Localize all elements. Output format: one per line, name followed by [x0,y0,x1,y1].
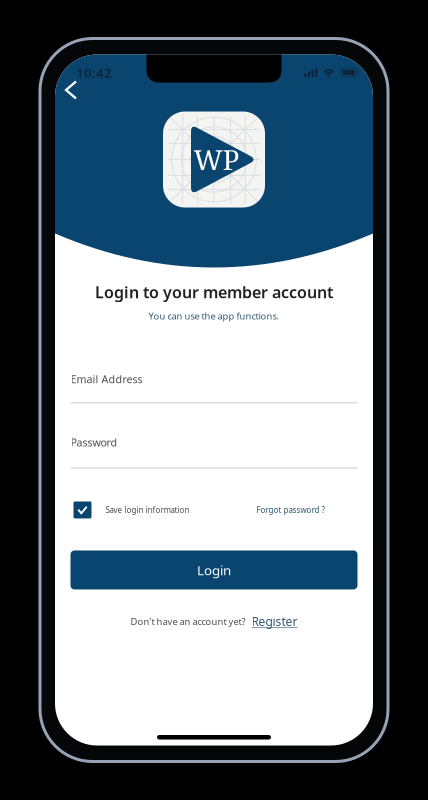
button[interactable]: Save login information [73,501,189,518]
staticText: Don’t have an account yet? [130,615,245,628]
staticText: Login [197,561,231,579]
button[interactable]: Back [54,72,88,107]
button[interactable]: Forgot password ? [256,505,324,515]
staticText: Password [70,435,117,449]
button[interactable]: Login [70,550,357,589]
staticText: Login to your member account [95,281,333,303]
button[interactable]: Register [251,613,297,629]
staticText: You can use the app functions. [148,310,279,322]
staticText: 10:42 [76,64,112,81]
staticText: Register [251,613,297,629]
staticText: Save login information [105,505,189,515]
staticText: WP [193,140,239,178]
staticText: Forgot password ? [256,505,324,515]
staticText: Email Address [70,372,142,386]
